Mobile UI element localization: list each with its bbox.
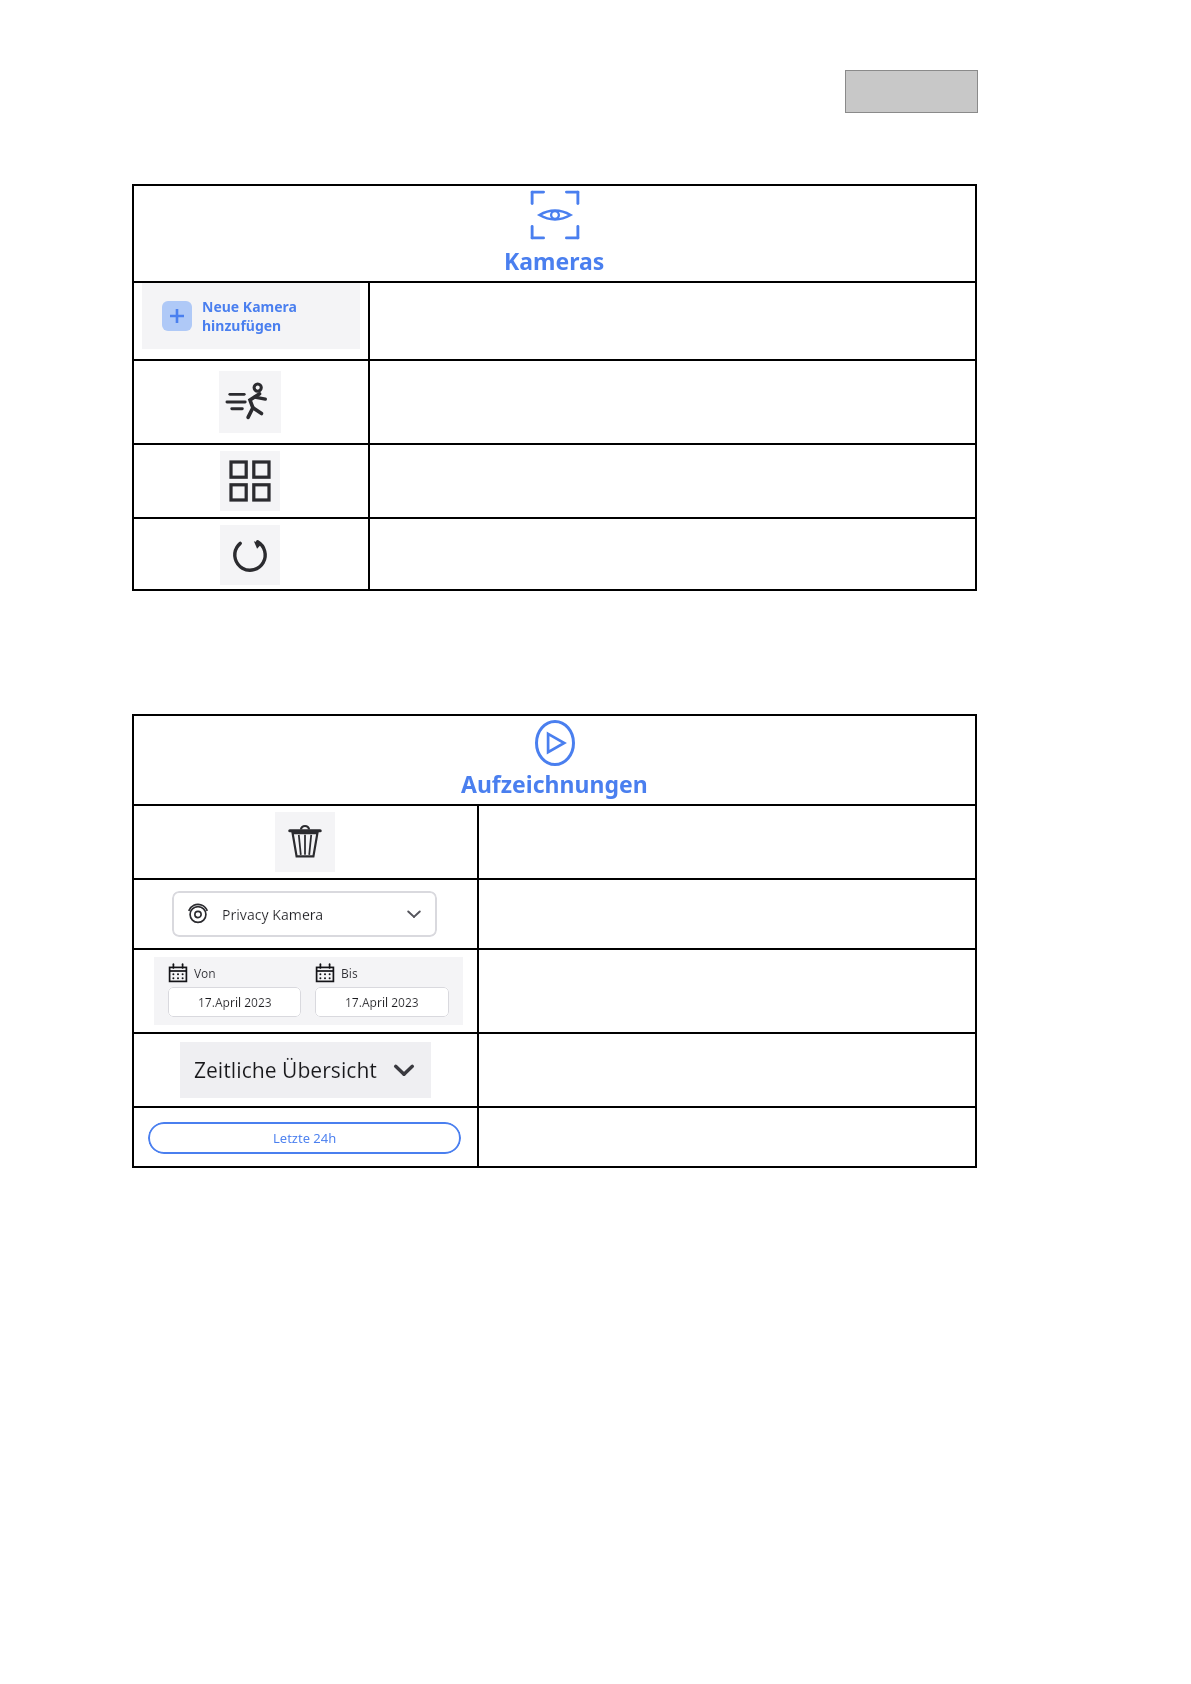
staticText: Privacy Kamera <box>222 905 324 924</box>
staticText: Kameras <box>504 245 605 276</box>
button[interactable]: Neue Kamera hinzufügen <box>142 283 360 349</box>
staticText: Neue Kamera hinzufügen <box>202 297 360 335</box>
staticText: Aufzeichnungen <box>461 768 648 799</box>
staticText: Letzte 24h <box>273 1129 337 1147</box>
staticText: Bis <box>341 965 358 981</box>
button[interactable]: Löschen <box>275 812 335 872</box>
button[interactable]: Aktualisieren <box>220 525 280 585</box>
button[interactable]: Letzte 24h <box>148 1122 461 1154</box>
button[interactable]: Bis <box>315 963 449 1017</box>
staticText: 17.April 2023 <box>345 994 419 1010</box>
button[interactable]: Von <box>168 963 301 1017</box>
button[interactable]: Privacy Kamera <box>172 891 437 937</box>
staticText: 17.April 2023 <box>198 994 272 1010</box>
button[interactable]: Zeitliche Übersicht <box>180 1042 431 1098</box>
staticText: Von <box>194 965 216 981</box>
button[interactable]: Bewegung <box>219 371 281 433</box>
staticText: Zeitliche Übersicht <box>194 1056 377 1085</box>
button[interactable]: Raster <box>220 451 280 511</box>
